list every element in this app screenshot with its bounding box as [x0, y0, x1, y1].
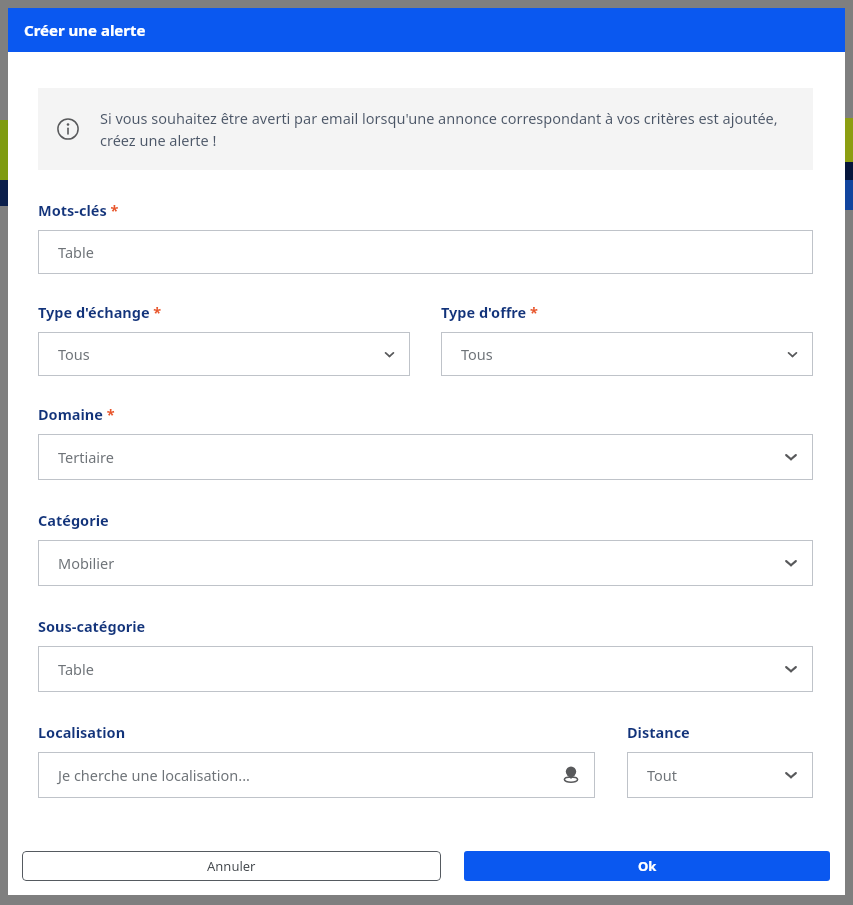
- staticText: Si vous souhaitez être averti par email …: [100, 108, 797, 150]
- staticText: Table: [58, 659, 94, 679]
- staticText: Type d'échange *: [38, 302, 162, 322]
- staticText: Tous: [461, 344, 493, 364]
- button[interactable]: Annuler: [22, 851, 441, 881]
- staticText: Créer une alerte: [24, 20, 146, 40]
- staticText: Localisation: [38, 722, 126, 742]
- button[interactable]: Tous: [38, 332, 410, 376]
- button[interactable]: Table: [38, 230, 813, 274]
- button[interactable]: Tout: [627, 752, 813, 798]
- staticText: Ok: [638, 857, 657, 875]
- staticText: Sous-catégorie: [38, 616, 146, 636]
- staticText: Je cherche une localisation...: [58, 765, 250, 785]
- staticText: Domaine *: [38, 404, 115, 424]
- staticText: Mots-clés *: [38, 200, 119, 220]
- staticText: Tous: [58, 344, 90, 364]
- other: Localiser: [561, 765, 581, 785]
- button[interactable]: Ok: [464, 851, 830, 881]
- button[interactable]: Mobilier: [38, 540, 813, 586]
- button[interactable]: Tertiaire: [38, 434, 813, 480]
- staticText: Table: [58, 242, 94, 262]
- button[interactable]: Je cherche une localisation...: [38, 752, 595, 798]
- staticText: Catégorie: [38, 510, 109, 530]
- staticText: Tertiaire: [58, 447, 114, 467]
- staticText: Type d'offre *: [441, 302, 538, 322]
- button[interactable]: Tous: [441, 332, 813, 376]
- staticText: Annuler: [207, 857, 256, 875]
- staticText: Tout: [647, 765, 678, 785]
- staticText: Mobilier: [58, 553, 115, 573]
- staticText: Distance: [627, 722, 690, 742]
- button[interactable]: Table: [38, 646, 813, 692]
